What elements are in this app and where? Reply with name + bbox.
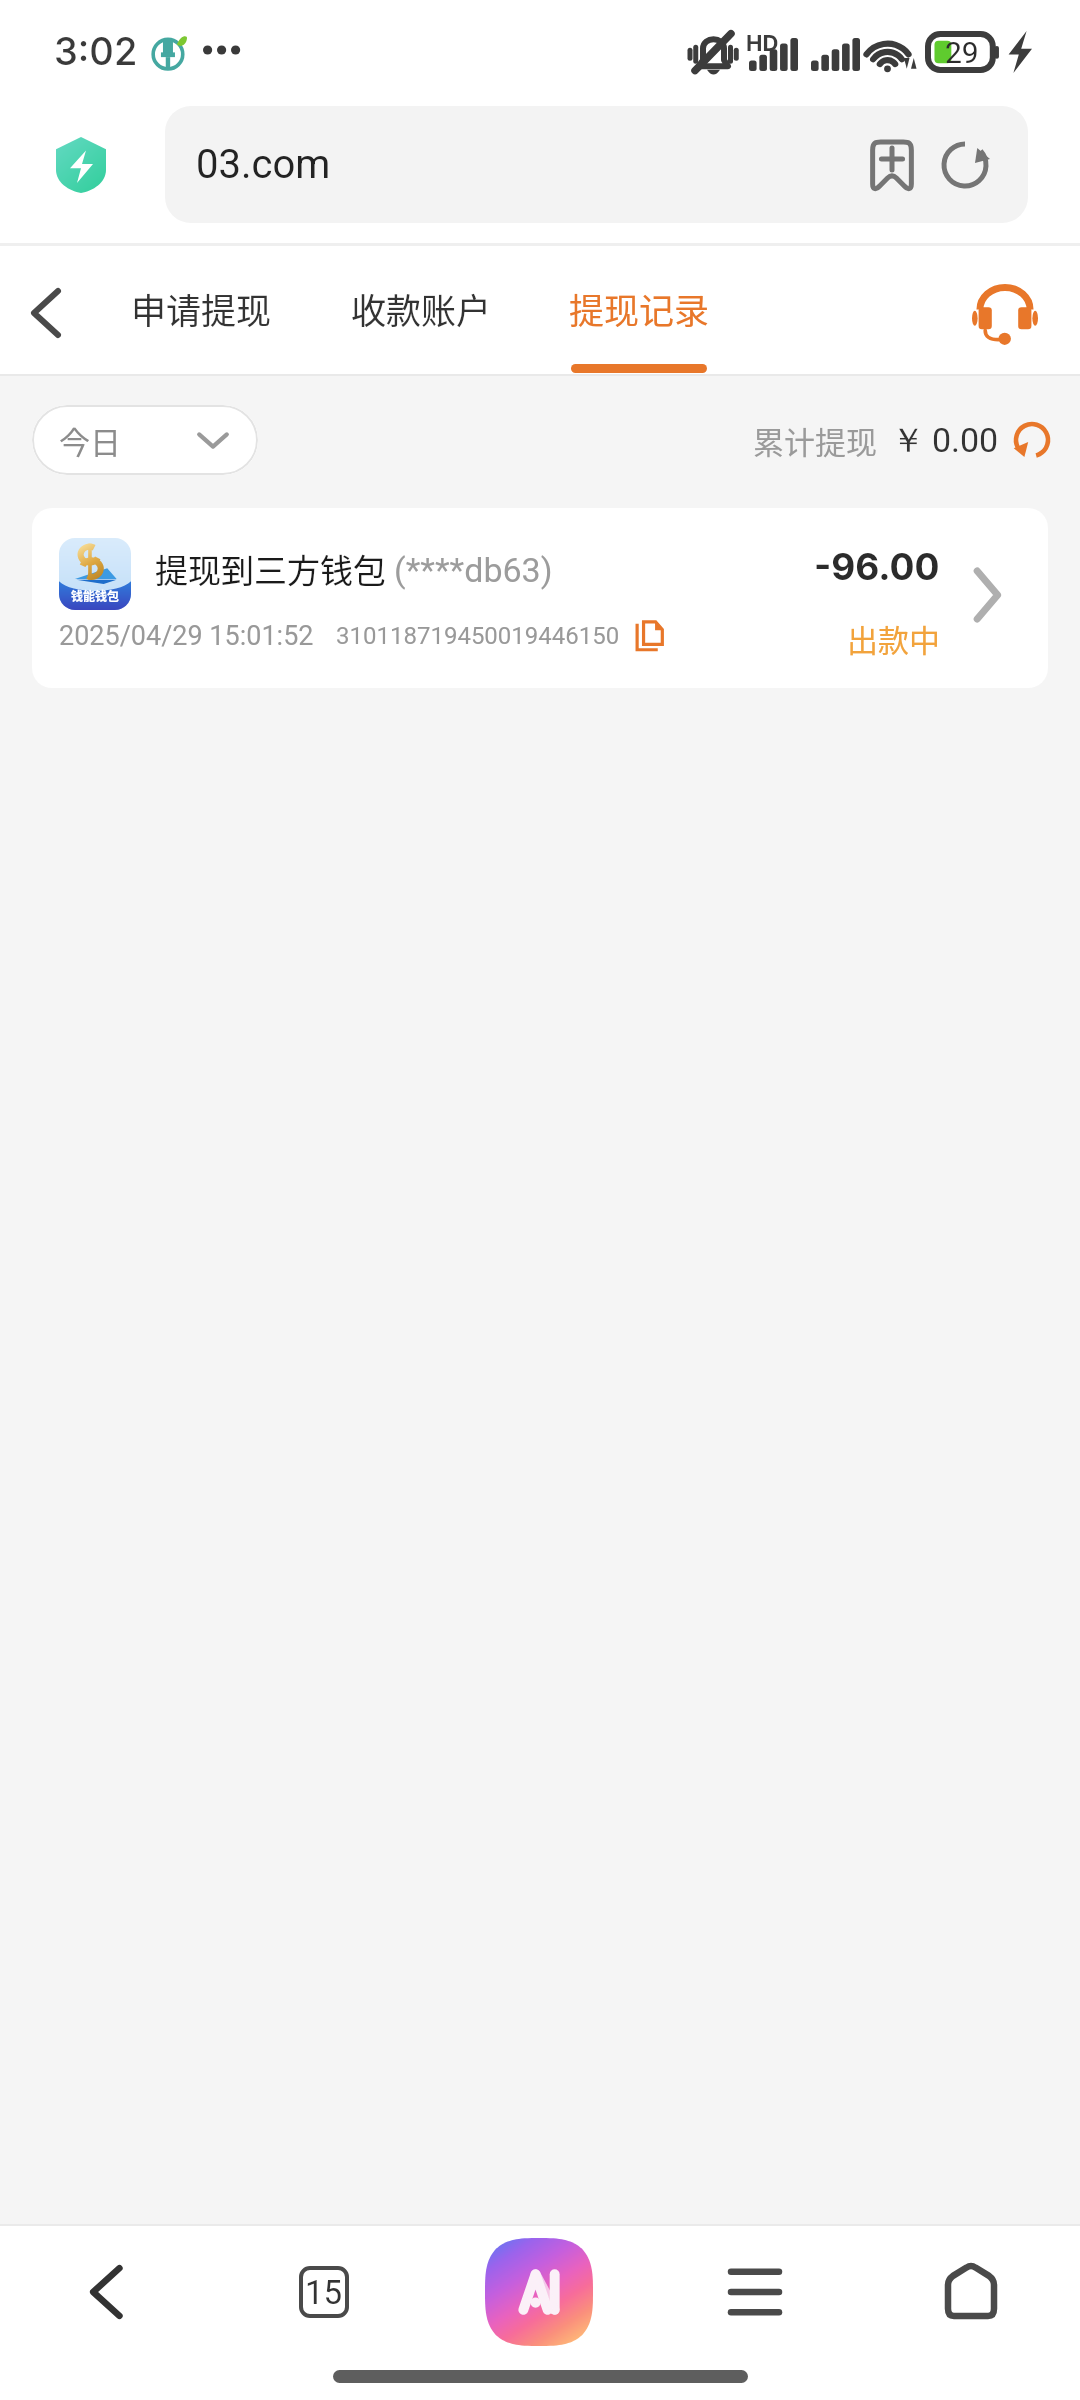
staticText: 累计提现	[753, 418, 877, 463]
staticText: (****db63)	[394, 550, 553, 590]
staticText: -96.00	[814, 544, 940, 589]
staticText: 申请提现	[131, 283, 272, 334]
button[interactable]: Menu	[690, 2238, 820, 2346]
staticText: 钱能钱包	[71, 587, 120, 604]
button[interactable]: 提现记录	[544, 246, 734, 376]
button[interactable]: 收款账户	[326, 246, 516, 376]
button[interactable]: Reload	[940, 140, 990, 190]
staticText: 提现到三方钱包	[155, 545, 386, 593]
staticText: 03.com	[196, 141, 331, 188]
staticText: 收款账户	[351, 283, 492, 334]
staticText: 3:02	[54, 28, 138, 74]
button[interactable]: Refresh	[1013, 421, 1051, 459]
staticText: 2025/04/29 15:01:52	[59, 620, 314, 652]
staticText: 提现记录	[569, 283, 710, 334]
staticText: 今日	[59, 418, 121, 463]
button[interactable]: Copy	[636, 620, 664, 652]
staticText: 15	[305, 2273, 343, 2312]
button[interactable]: 钱能钱包	[32, 508, 1048, 688]
staticText: ￥ 0.00	[891, 419, 999, 462]
button[interactable]: Customer service	[960, 268, 1050, 358]
button[interactable]: 03.com	[165, 106, 1028, 223]
button[interactable]: Bookmark	[870, 140, 914, 190]
staticText: 出款中	[847, 616, 940, 661]
button[interactable]: Tabs	[259, 2238, 389, 2346]
button[interactable]: Back	[2, 269, 90, 357]
button[interactable]: Back	[41, 2238, 171, 2346]
staticText: 29	[945, 35, 979, 70]
button[interactable]: 今日	[32, 405, 258, 475]
button[interactable]: AI assistant	[474, 2238, 604, 2346]
staticText: 310118719450019446150	[336, 622, 620, 650]
staticText: HD	[746, 30, 779, 57]
button[interactable]: Home	[906, 2238, 1036, 2346]
button[interactable]: 申请提现	[106, 246, 296, 376]
